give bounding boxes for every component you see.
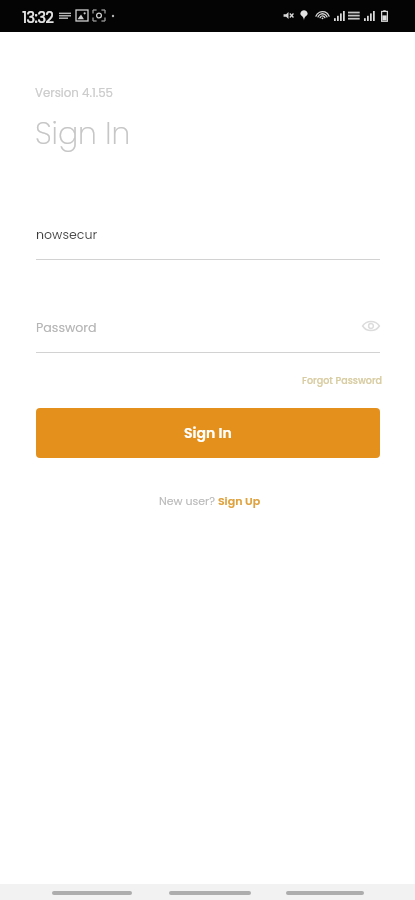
staticText: Sign In — [184, 423, 232, 443]
button[interactable]: Show password — [360, 315, 382, 337]
button[interactable]: New user? Sign Up — [155, 491, 265, 510]
staticText: Sign In — [35, 113, 131, 155]
button[interactable]: Recent apps — [52, 891, 132, 895]
staticText: Password — [36, 319, 97, 337]
staticText: Version 4.1.55 — [35, 85, 113, 102]
button[interactable]: Forgot Password — [296, 371, 383, 389]
button[interactable]: Sign In — [36, 408, 380, 458]
button[interactable]: Back — [286, 891, 364, 895]
staticText: 13:32 — [22, 7, 53, 28]
staticText: New user? Sign Up — [159, 493, 261, 508]
staticText: nowsecur — [36, 226, 98, 244]
button[interactable]: Home — [169, 891, 251, 895]
staticText: Forgot Password — [302, 374, 383, 387]
